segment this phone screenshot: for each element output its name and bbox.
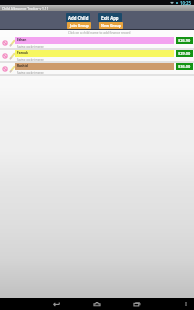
button[interactable]: Edit: [10, 50, 15, 61]
button[interactable]: Delete: [0, 50, 194, 63]
staticText: New Group: [101, 23, 121, 28]
button[interactable]: New Group: [99, 22, 123, 29]
staticText: Exit App: [101, 15, 119, 21]
button[interactable]: Recent apps: [129, 298, 145, 310]
staticText: Saving: pocket money: [17, 71, 44, 74]
button[interactable]: Exit App: [98, 13, 122, 22]
staticText: Join Group: [70, 23, 89, 28]
button[interactable]: Edit: [10, 37, 15, 48]
button[interactable]: Home: [89, 298, 105, 310]
button[interactable]: Back: [49, 298, 65, 310]
staticText: $26.90: [178, 38, 191, 43]
button[interactable]: $26.90: [176, 37, 193, 44]
button[interactable]: Delete: [0, 37, 10, 48]
staticText: 10:25: [180, 0, 192, 5]
staticText: Add Child: [68, 15, 89, 21]
button[interactable]: Delete: [0, 50, 10, 61]
staticText: Saving: pocket money: [17, 45, 44, 48]
button[interactable]: Delete: [0, 37, 194, 50]
button[interactable]: More options: [181, 299, 191, 309]
button[interactable]: Edit: [10, 63, 15, 74]
staticText: Saving: pocket money: [17, 58, 44, 61]
button[interactable]: Add Child: [66, 13, 90, 22]
button[interactable]: Join Group: [67, 22, 91, 29]
button[interactable]: $36.00: [176, 63, 193, 70]
button[interactable]: Delete: [0, 63, 10, 74]
button[interactable]: $29.00: [176, 50, 193, 57]
staticText: Child Allowance Tracker v 1.11: [2, 6, 49, 10]
staticText: Ethan: [17, 38, 27, 42]
staticText: Farouk: [17, 51, 29, 55]
staticText: $29.00: [178, 51, 191, 56]
button[interactable]: Delete: [0, 63, 194, 76]
staticText: $36.00: [178, 64, 191, 69]
staticText: Click on a child name to add finance rec…: [68, 31, 131, 35]
staticText: Rashid: [17, 64, 28, 68]
